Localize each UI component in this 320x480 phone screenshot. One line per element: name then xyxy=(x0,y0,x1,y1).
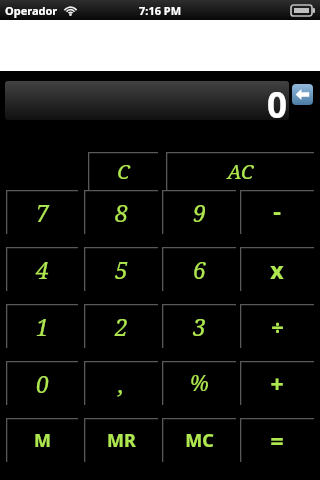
button[interactable]: 2 xyxy=(84,304,158,348)
staticText: M xyxy=(34,428,51,453)
staticText: + xyxy=(270,368,284,399)
staticText: Operador xyxy=(5,3,58,18)
button[interactable]: 0 xyxy=(6,361,78,405)
other: Wi-Fi xyxy=(63,4,78,17)
button[interactable]: 7 xyxy=(6,190,78,234)
other: Battery xyxy=(291,5,315,16)
staticText: 8 xyxy=(115,197,128,228)
button[interactable]: Backspace xyxy=(292,84,313,105)
staticText: 7:16 PM xyxy=(139,3,182,18)
staticText: 2 xyxy=(115,311,128,342)
button[interactable]: , xyxy=(84,361,158,405)
button[interactable]: 3 xyxy=(162,304,236,348)
staticText: ÷ xyxy=(271,311,284,341)
staticText: MC xyxy=(185,428,214,453)
staticText: 9 xyxy=(193,197,206,228)
staticText: % xyxy=(190,369,209,398)
button[interactable]: 4 xyxy=(6,247,78,291)
staticText: 4 xyxy=(36,254,49,285)
button[interactable]: AC xyxy=(166,152,314,191)
staticText: 7 xyxy=(36,197,49,228)
staticText: 0 xyxy=(36,368,49,399)
staticText: C xyxy=(117,158,130,185)
staticText: 5 xyxy=(115,254,128,285)
button[interactable]: + xyxy=(240,361,314,405)
button[interactable]: M xyxy=(6,418,78,462)
staticText: , xyxy=(118,368,124,399)
button[interactable]: 8 xyxy=(84,190,158,234)
staticText: 0 xyxy=(267,81,288,120)
button[interactable]: x xyxy=(240,247,314,291)
button[interactable]: 0 xyxy=(5,81,289,120)
button[interactable]: MR xyxy=(84,418,158,462)
staticText: 6 xyxy=(193,254,206,285)
staticText: 3 xyxy=(193,311,206,342)
button[interactable]: 1 xyxy=(6,304,78,348)
staticText: MR xyxy=(107,428,136,453)
button[interactable]: 5 xyxy=(84,247,158,291)
button[interactable]: - xyxy=(240,190,314,234)
staticText: AC xyxy=(227,158,254,185)
button[interactable]: = xyxy=(240,418,314,462)
staticText: = xyxy=(270,425,284,456)
button[interactable]: MC xyxy=(162,418,236,462)
staticText: - xyxy=(273,194,281,227)
button[interactable]: C xyxy=(88,152,158,191)
button[interactable]: 6 xyxy=(162,247,236,291)
button[interactable]: ÷ xyxy=(240,304,314,348)
button[interactable]: % xyxy=(162,361,236,405)
staticText: x xyxy=(270,254,284,285)
button[interactable]: 9 xyxy=(162,190,236,234)
staticText: 1 xyxy=(36,311,49,342)
